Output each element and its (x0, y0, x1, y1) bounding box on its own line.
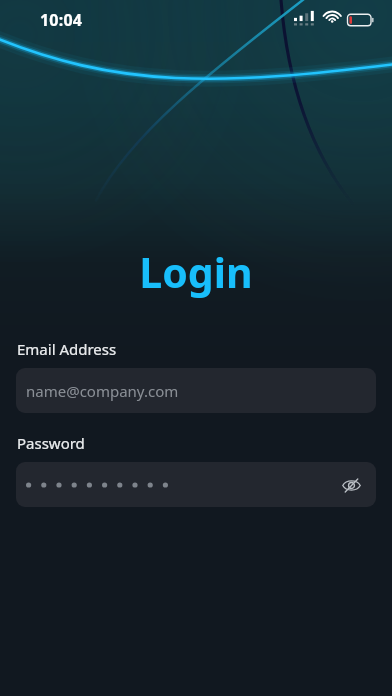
button[interactable]: name@company.com (16, 368, 376, 413)
staticText: Email Address (17, 339, 117, 359)
staticText: 10:04 (40, 9, 83, 31)
staticText: Password (17, 433, 85, 453)
staticText: Login (0, 244, 392, 300)
staticText: name@company.com (26, 381, 179, 401)
button[interactable]: Show password (16, 462, 376, 507)
button[interactable]: Show password (334, 468, 368, 502)
